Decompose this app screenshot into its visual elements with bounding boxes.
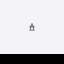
button[interactable]: App logo [25, 20, 39, 34]
